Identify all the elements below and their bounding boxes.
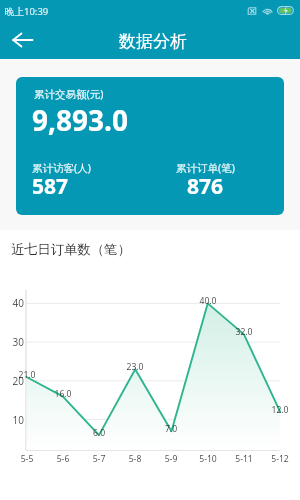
staticText: 10 — [4, 413, 24, 427]
staticText: 5-10 — [193, 453, 223, 465]
staticText: 累计订单(笔) — [176, 161, 235, 175]
staticText: 累计交易额(元) — [34, 87, 104, 101]
staticText: 7.0 — [156, 423, 186, 435]
staticText: 12.0 — [265, 404, 295, 416]
staticText: 晚上10:39 — [5, 5, 49, 18]
staticText: 23.0 — [120, 361, 150, 373]
staticText: 876 — [187, 172, 224, 201]
staticText: 5-11 — [229, 453, 259, 465]
staticText: 近七日订单数（笔） — [11, 241, 131, 258]
staticText: 20 — [4, 374, 24, 388]
staticText: 40.0 — [193, 295, 223, 307]
staticText: 5-6 — [48, 453, 78, 465]
staticText: 40 — [4, 296, 24, 310]
staticText: 587 — [32, 172, 69, 201]
staticText: 数据分析 — [119, 31, 187, 52]
staticText: 32.0 — [229, 326, 259, 338]
staticText: 5-8 — [120, 453, 150, 465]
staticText: 9,893.0 — [32, 101, 128, 139]
staticText: 5-9 — [156, 453, 186, 465]
staticText: 6.0 — [84, 427, 114, 439]
staticText: 5-7 — [84, 453, 114, 465]
staticText: 5-5 — [12, 453, 42, 465]
button[interactable]: 累计交易额(元) — [16, 77, 284, 215]
staticText: 16.0 — [48, 388, 78, 400]
button[interactable]: Back — [0, 22, 44, 59]
staticText: 30 — [4, 335, 24, 349]
staticText: 5-12 — [265, 453, 295, 465]
staticText: 21.0 — [12, 369, 42, 381]
staticText: 累计访客(人) — [32, 161, 91, 175]
